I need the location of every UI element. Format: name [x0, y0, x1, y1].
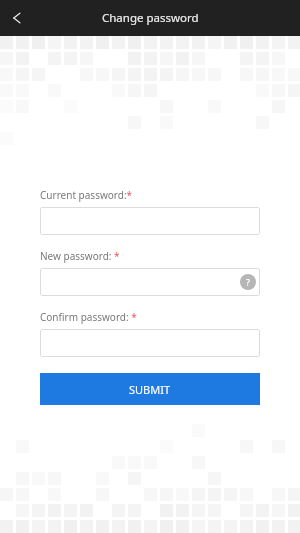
- staticText: Change password: [102, 10, 199, 26]
- staticText: ?: [246, 276, 250, 288]
- button[interactable]: SUBMIT: [40, 373, 260, 405]
- button[interactable]: [40, 207, 260, 235]
- staticText: Current password:*: [40, 188, 133, 202]
- staticText: New password: *: [40, 249, 120, 263]
- staticText: Confirm password: *: [40, 310, 137, 324]
- button[interactable]: [40, 329, 260, 357]
- button[interactable]: Back: [0, 1, 34, 35]
- button[interactable]: Password help: [240, 274, 256, 290]
- staticText: SUBMIT: [129, 382, 171, 397]
- button[interactable]: Password help: [40, 268, 260, 296]
